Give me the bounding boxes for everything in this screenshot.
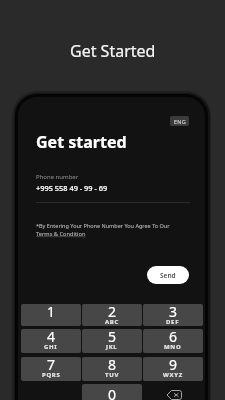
staticText: 5 <box>108 329 117 346</box>
staticText: 1 <box>47 304 56 321</box>
staticText: 7 <box>47 357 56 374</box>
staticText: TUV <box>105 371 119 379</box>
staticText: 9 <box>169 357 178 374</box>
button[interactable]: 8 <box>82 357 142 381</box>
button[interactable]: Terms & Condition <box>36 230 86 238</box>
button[interactable]: ENG <box>170 116 189 126</box>
button[interactable]: 4 <box>21 329 81 353</box>
button[interactable]: 6 <box>143 329 203 353</box>
staticText: 0 <box>108 385 117 400</box>
staticText: *By Entering Your Phone Number You Agree… <box>36 222 170 229</box>
staticText: MNO <box>164 343 182 351</box>
staticText: Phone number <box>36 173 79 181</box>
staticText: ABC <box>105 318 120 326</box>
staticText: 8 <box>108 357 117 374</box>
staticText: PQRS <box>42 371 61 379</box>
button[interactable]: 0 <box>82 384 142 400</box>
button[interactable]: 2 <box>82 304 142 326</box>
button[interactable]: 3 <box>143 304 203 326</box>
staticText: Send <box>160 271 176 280</box>
button[interactable]: 7 <box>21 357 81 381</box>
button[interactable]: Backspace <box>143 384 203 400</box>
staticText: ENG <box>174 118 186 125</box>
button[interactable]: Send <box>147 266 189 284</box>
staticText: 6 <box>169 329 178 346</box>
staticText: Get Started <box>70 40 156 62</box>
staticText: JKL <box>106 343 118 351</box>
staticText: 3 <box>169 304 178 321</box>
button[interactable]: 1 <box>21 304 81 326</box>
button[interactable]: 9 <box>143 357 203 381</box>
staticText: Get started <box>36 131 127 153</box>
staticText: DEF <box>166 318 180 326</box>
staticText: 2 <box>108 304 117 321</box>
staticText: WXYZ <box>163 371 183 379</box>
staticText: 4 <box>47 329 56 346</box>
staticText: +995 558 49 - 99 - 69 <box>36 183 108 193</box>
staticText: GHI <box>44 343 58 351</box>
button[interactable]: 5 <box>82 329 142 353</box>
